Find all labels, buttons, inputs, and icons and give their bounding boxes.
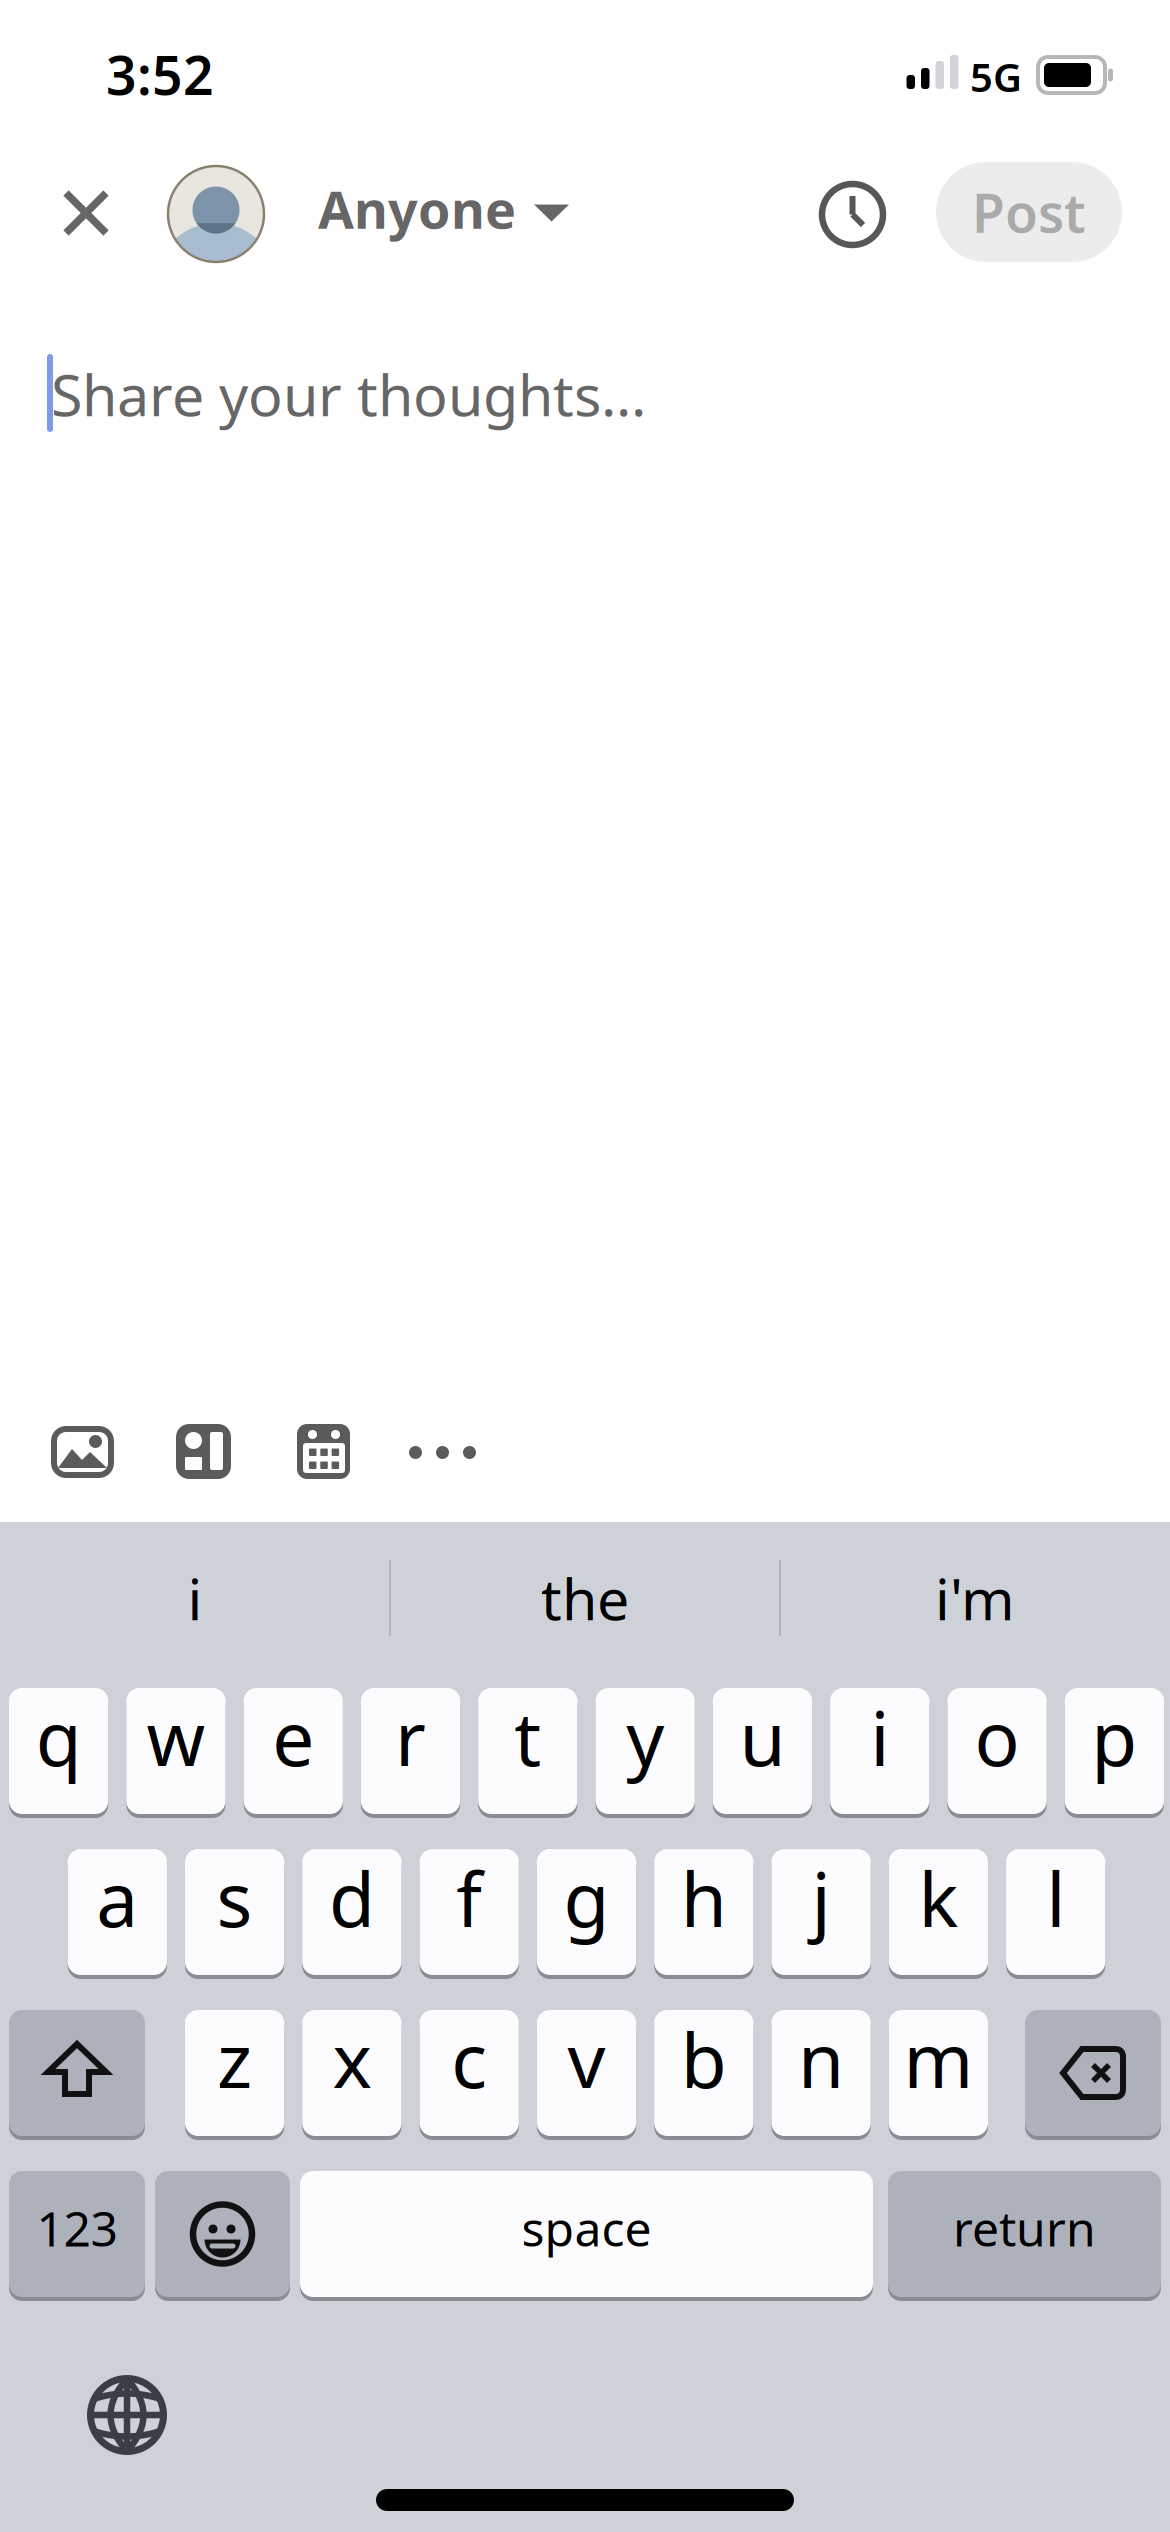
- button[interactable]: a: [68, 1847, 167, 1977]
- button[interactable]: r: [361, 1686, 460, 1816]
- staticText: i: [870, 1687, 889, 1787]
- staticText: x: [332, 2009, 371, 2109]
- button[interactable]: [297, 1424, 350, 1479]
- button[interactable]: x: [302, 2008, 401, 2138]
- staticText: b: [681, 2009, 727, 2109]
- staticText: 5G: [970, 50, 1022, 103]
- button[interactable]: d: [302, 1847, 401, 1977]
- button[interactable]: y: [595, 1686, 695, 1816]
- button[interactable]: n: [771, 2008, 871, 2138]
- staticText: r: [395, 1687, 426, 1787]
- button[interactable]: g: [537, 1847, 636, 1977]
- staticText: Post: [972, 177, 1086, 247]
- button[interactable]: v: [537, 2008, 636, 2138]
- button[interactable]: p: [1065, 1686, 1164, 1816]
- staticText: f: [456, 1848, 482, 1948]
- button[interactable]: l: [1006, 1847, 1105, 1977]
- button[interactable]: m: [889, 2008, 988, 2138]
- button[interactable]: z: [185, 2008, 284, 2138]
- staticText: l: [1046, 1848, 1065, 1948]
- button[interactable]: [1025, 2008, 1161, 2138]
- staticText: m: [903, 2009, 973, 2109]
- staticText: c: [451, 2009, 487, 2109]
- button[interactable]: k: [889, 1847, 988, 1977]
- staticText: t: [514, 1687, 541, 1787]
- staticText: w: [146, 1687, 205, 1787]
- button[interactable]: [176, 1424, 231, 1479]
- button[interactable]: [155, 2169, 290, 2299]
- staticText: g: [563, 1848, 609, 1948]
- button[interactable]: the: [390, 1528, 780, 1668]
- button[interactable]: u: [713, 1686, 812, 1816]
- staticText: 3:52: [106, 39, 214, 110]
- staticText: i: [187, 1560, 202, 1636]
- staticText: q: [36, 1687, 82, 1787]
- button[interactable]: [62, 189, 110, 237]
- staticText: p: [1091, 1687, 1137, 1787]
- button[interactable]: [822, 184, 883, 245]
- button[interactable]: [9, 2008, 145, 2138]
- button[interactable]: c: [419, 2008, 519, 2138]
- button[interactable]: t: [478, 1686, 577, 1816]
- button[interactable]: h: [654, 1847, 753, 1977]
- button[interactable]: space: [300, 2169, 873, 2299]
- button[interactable]: [51, 1426, 114, 1478]
- button[interactable]: o: [947, 1686, 1047, 1816]
- staticText: h: [681, 1848, 727, 1948]
- button[interactable]: s: [185, 1847, 284, 1977]
- staticText: j: [812, 1848, 831, 1948]
- staticText: u: [739, 1687, 785, 1787]
- staticText: n: [798, 2009, 844, 2109]
- staticText: y: [626, 1687, 664, 1787]
- staticText: z: [217, 2009, 252, 2109]
- staticText: return: [953, 2196, 1096, 2260]
- staticText: Anyone: [318, 174, 516, 243]
- button[interactable]: [409, 1446, 476, 1459]
- button[interactable]: Post: [936, 162, 1122, 262]
- staticText: Share your thoughts...: [51, 356, 646, 432]
- staticText: o: [974, 1687, 1019, 1787]
- button[interactable]: i'm: [780, 1528, 1170, 1668]
- staticText: d: [329, 1848, 375, 1948]
- button[interactable]: i: [830, 1686, 929, 1816]
- button[interactable]: 123: [9, 2169, 145, 2299]
- staticText: space: [521, 2196, 651, 2260]
- button[interactable]: [87, 2375, 167, 2455]
- button[interactable]: [168, 166, 264, 262]
- staticText: v: [567, 2009, 605, 2109]
- button[interactable]: e: [244, 1686, 343, 1816]
- button[interactable]: q: [9, 1686, 108, 1816]
- button[interactable]: w: [126, 1686, 226, 1816]
- button[interactable]: Anyone: [318, 174, 570, 243]
- staticText: e: [272, 1687, 314, 1787]
- button[interactable]: return: [888, 2169, 1161, 2299]
- staticText: k: [918, 1848, 958, 1948]
- staticText: the: [541, 1560, 629, 1636]
- staticText: i'm: [935, 1560, 1015, 1636]
- button[interactable]: j: [771, 1847, 871, 1977]
- button[interactable]: f: [419, 1847, 519, 1977]
- button[interactable]: i: [0, 1528, 390, 1668]
- staticText: s: [217, 1848, 253, 1948]
- staticText: 123: [36, 2196, 117, 2260]
- staticText: a: [96, 1848, 138, 1948]
- button[interactable]: b: [654, 2008, 753, 2138]
